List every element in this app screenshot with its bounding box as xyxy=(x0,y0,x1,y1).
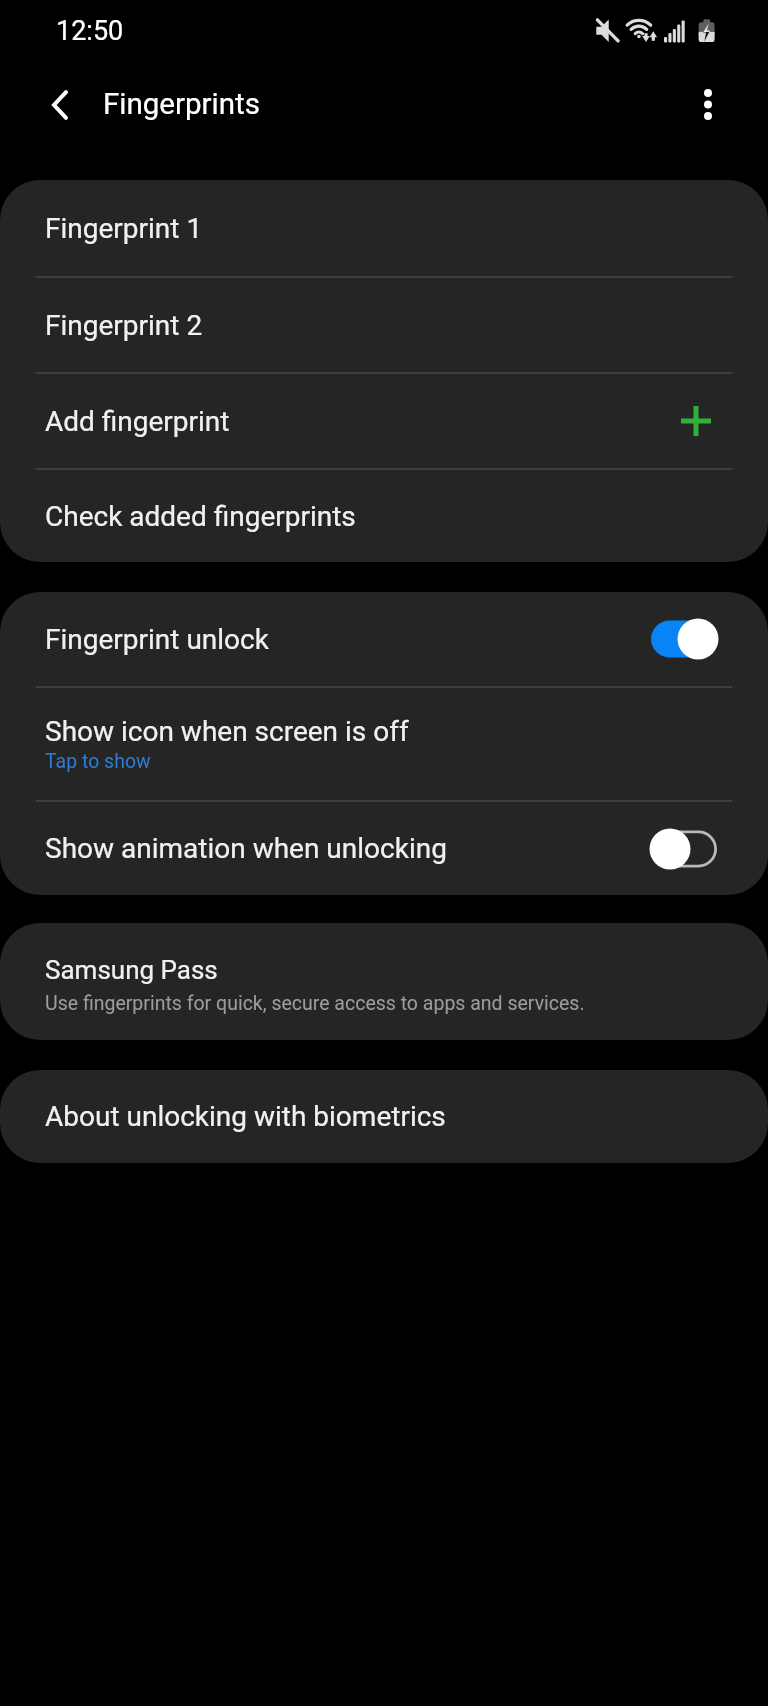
staticText: Add fingerprint xyxy=(45,405,230,438)
staticText: About unlocking with biometrics xyxy=(45,1100,446,1133)
button[interactable]: About unlocking with biometrics xyxy=(0,1070,768,1163)
staticText: 12:50 xyxy=(56,15,124,47)
staticText: Fingerprint 2 xyxy=(45,309,203,342)
button[interactable]: Navigate up xyxy=(33,76,89,132)
staticText: Check added fingerprints xyxy=(45,500,356,533)
button[interactable]: Check added fingerprints xyxy=(0,470,768,562)
button[interactable]: Fingerprint 1 xyxy=(0,180,768,276)
staticText: Tap to show xyxy=(45,750,151,773)
button[interactable]: Add fingerprint xyxy=(0,374,768,468)
staticText: Fingerprint unlock xyxy=(45,623,269,656)
staticText: Show animation when unlocking xyxy=(45,832,447,865)
staticText: Samsung Pass xyxy=(45,955,218,985)
button[interactable]: Show icon when screen is off xyxy=(0,688,768,800)
button[interactable]: Fingerprint unlock xyxy=(0,592,768,686)
staticText: Fingerprint 1 xyxy=(45,212,203,245)
button[interactable]: More options xyxy=(680,76,736,132)
button[interactable]: Fingerprint 2 xyxy=(0,278,768,372)
staticText: Show icon when screen is off xyxy=(45,715,409,748)
button[interactable]: Samsung Pass xyxy=(0,923,768,1040)
staticText: Fingerprints xyxy=(103,87,260,122)
staticText: Use fingerprints for quick, secure acces… xyxy=(45,992,585,1015)
button[interactable]: Show animation when unlocking xyxy=(0,802,768,895)
